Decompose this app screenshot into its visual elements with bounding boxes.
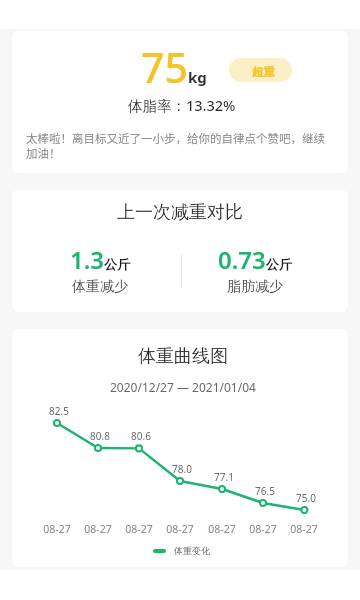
staticText: 脂肪减少 <box>227 278 283 296</box>
staticText: 1.3公斤 <box>70 243 131 276</box>
button[interactable]: 超重 <box>229 58 292 82</box>
staticText: 82.5 <box>49 404 69 418</box>
staticText: 体重变化 <box>174 545 210 556</box>
staticText: 太棒啦！离目标又近了一小步，给你的自律点个赞吧，继续加油！ <box>26 130 334 161</box>
staticText: 78.0 <box>172 462 192 476</box>
staticText: 超重 <box>252 65 275 79</box>
staticText: 75kg <box>141 39 207 95</box>
staticText: 08-27 <box>166 522 194 536</box>
staticText: 上一次减重对比 <box>117 201 243 224</box>
staticText: 0.73公斤 <box>218 243 292 276</box>
staticText: 77.1 <box>214 470 234 484</box>
staticText: 08-27 <box>84 522 112 536</box>
staticText: 76.5 <box>255 484 275 498</box>
staticText: 08-27 <box>290 522 318 536</box>
staticText: 80.8 <box>90 429 110 443</box>
staticText: 08-27 <box>208 522 236 536</box>
staticText: 体重减少 <box>72 278 128 296</box>
staticText: 08-27 <box>43 522 71 536</box>
staticText: 80.6 <box>131 429 151 443</box>
staticText: 体脂率：13.32% <box>128 95 236 115</box>
staticText: 2020/12/27 — 2021/01/04 <box>110 379 256 395</box>
staticText: 75.0 <box>296 491 316 505</box>
staticText: 08-27 <box>125 522 153 536</box>
staticText: 体重曲线图 <box>138 345 228 368</box>
staticText: 08-27 <box>249 522 277 536</box>
